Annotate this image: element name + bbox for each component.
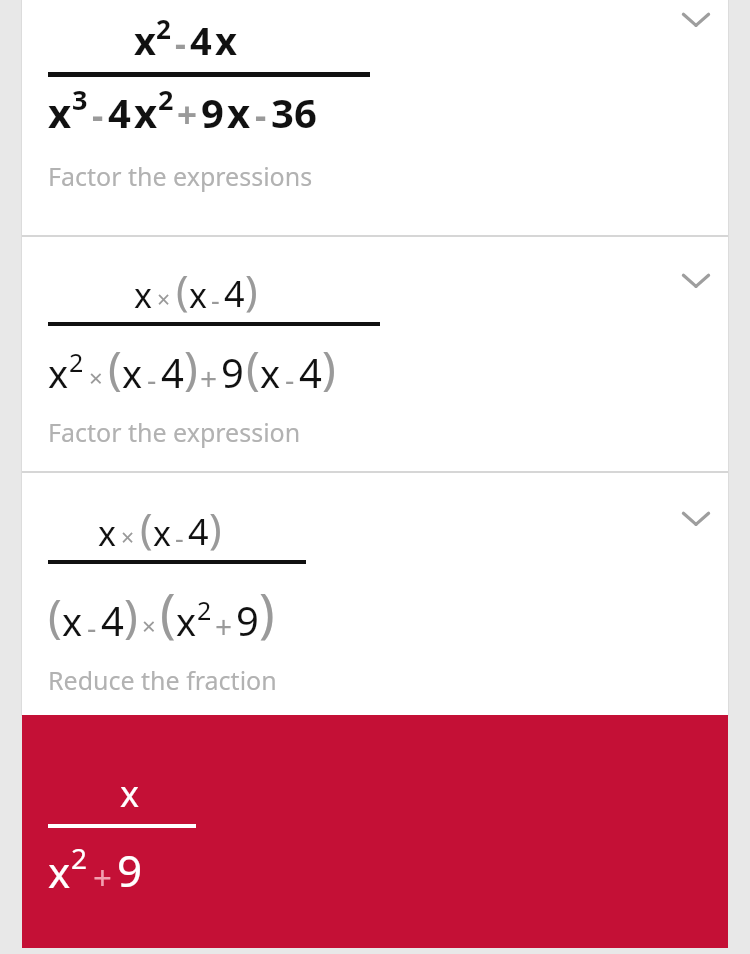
staticText: x	[215, 14, 237, 66]
staticText: Reduce the fraction	[48, 663, 277, 697]
staticText: 36	[271, 85, 317, 139]
staticText: +	[215, 606, 233, 647]
staticText: 4	[188, 507, 209, 556]
button[interactable]: x	[22, 237, 728, 471]
staticText: x	[120, 769, 140, 818]
staticText: 2	[158, 81, 174, 118]
staticText: x	[134, 272, 152, 318]
staticText: (	[176, 261, 189, 318]
staticText: x	[176, 595, 197, 647]
staticText: 9	[221, 345, 244, 399]
staticText: x	[48, 85, 72, 139]
staticText: (	[140, 499, 153, 556]
staticText: (	[246, 336, 260, 399]
staticText: -	[211, 281, 220, 318]
staticText: Factor the expressions	[48, 159, 313, 193]
staticText: +	[177, 91, 198, 139]
staticText: -	[285, 360, 295, 399]
staticText: 4	[190, 14, 212, 66]
staticText: -	[175, 519, 184, 556]
staticText: ×	[89, 361, 103, 394]
staticText: 3	[72, 81, 88, 118]
staticText: Factor the expression	[48, 415, 301, 449]
staticText: +	[200, 358, 218, 399]
staticText: x	[62, 595, 83, 647]
button[interactable]: Expand step	[668, 253, 724, 309]
staticText: -	[255, 91, 267, 139]
staticText: x	[48, 347, 69, 399]
staticText: (	[160, 576, 176, 647]
staticText: x	[134, 85, 158, 139]
staticText: x	[153, 510, 171, 556]
staticText: x	[98, 510, 116, 556]
staticText: 2	[69, 345, 84, 379]
staticText: -	[147, 360, 157, 399]
staticText: x	[48, 843, 71, 900]
staticText: 9	[117, 840, 143, 900]
staticText: 4	[161, 345, 184, 399]
staticText: 2	[71, 839, 88, 877]
button[interactable]: Expand step	[668, 0, 724, 48]
staticText: x	[189, 272, 207, 318]
staticText: ×	[157, 283, 171, 314]
staticText: (	[108, 336, 122, 399]
staticText: x	[122, 347, 143, 399]
staticText: )	[184, 336, 198, 399]
staticText: 9	[236, 593, 259, 647]
button[interactable]: x	[22, 473, 728, 715]
staticText: 9	[201, 85, 224, 139]
staticText: x	[134, 14, 156, 66]
staticText: 4	[101, 593, 124, 647]
staticText: )	[259, 576, 275, 647]
staticText: 2	[197, 593, 212, 627]
staticText: -	[175, 20, 186, 66]
staticText: x	[227, 85, 251, 139]
button[interactable]: Expand step	[668, 491, 724, 547]
staticText: ×	[121, 521, 135, 552]
staticText: (	[48, 584, 62, 647]
staticText: +	[93, 855, 112, 900]
staticText: )	[209, 499, 222, 556]
staticText: 4	[224, 269, 245, 318]
staticText: 2	[156, 11, 171, 46]
staticText: x	[260, 347, 281, 399]
staticText: ×	[142, 609, 156, 642]
staticText: )	[245, 261, 258, 318]
staticText: )	[124, 584, 138, 647]
staticText: -	[87, 608, 97, 647]
staticText: 4	[108, 85, 131, 139]
staticText: )	[322, 336, 336, 399]
button[interactable]: x	[22, 0, 728, 235]
staticText: -	[92, 91, 104, 139]
staticText: 4	[299, 345, 322, 399]
button[interactable]: x	[22, 715, 728, 948]
